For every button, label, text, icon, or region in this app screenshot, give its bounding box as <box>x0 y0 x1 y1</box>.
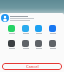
button[interactable]: Share <box>8 40 15 49</box>
button[interactable]: Share <box>35 25 42 34</box>
button[interactable]: Cancel <box>2 63 62 70</box>
staticText: Cancel <box>26 64 39 69</box>
button[interactable]: Share <box>22 25 29 34</box>
button[interactable]: Share <box>8 25 15 34</box>
button[interactable]: Share <box>49 25 56 34</box>
button[interactable]: Share <box>35 40 42 49</box>
button[interactable]: Share <box>49 40 56 49</box>
button[interactable]: Share <box>22 40 29 49</box>
